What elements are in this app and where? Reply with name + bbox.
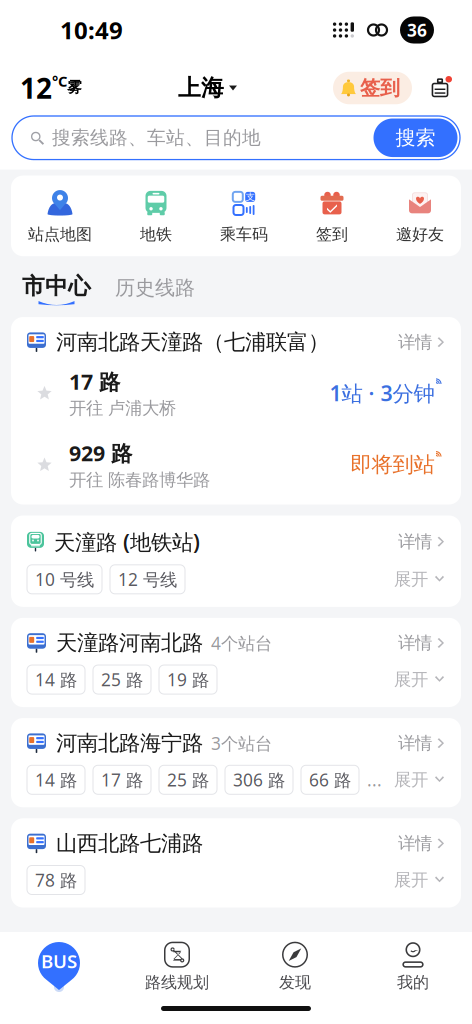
button[interactable]: 详情 xyxy=(398,732,445,754)
staticText: 10 号线 xyxy=(35,568,94,591)
button[interactable]: 展开 xyxy=(394,869,445,891)
button[interactable]: 展开 xyxy=(394,669,445,690)
staticText: 开往 陈春路博华路 xyxy=(69,469,210,490)
staticText: 开往 卢浦大桥 xyxy=(69,398,176,419)
button[interactable]: 历史线路 xyxy=(115,275,195,307)
staticText: 发现 xyxy=(279,973,311,992)
staticText: 详情 xyxy=(398,331,432,353)
button[interactable]: 详情 xyxy=(398,331,445,353)
staticText: 17 路 xyxy=(101,768,143,791)
staticText: 雾 xyxy=(67,78,82,96)
staticText: 19 路 xyxy=(167,668,209,691)
staticText: 河南北路天潼路（七浦联富） xyxy=(56,329,329,355)
button[interactable]: 详情 xyxy=(398,833,445,854)
staticText: 市中心 xyxy=(22,272,91,300)
button[interactable]: 地铁 xyxy=(140,190,172,244)
staticText: 路线规划 xyxy=(145,973,209,992)
staticText: 历史线路 xyxy=(115,275,195,300)
staticText: 25 路 xyxy=(101,668,143,691)
staticText: 站点地图 xyxy=(28,225,92,244)
staticText: 天潼路 (地铁站) xyxy=(54,527,200,556)
button[interactable]: 公交 xyxy=(0,940,118,994)
button[interactable]: 展开 xyxy=(394,569,445,590)
button[interactable]: 天潼路 (地铁站) xyxy=(11,515,461,565)
button[interactable]: 市中心 xyxy=(22,272,91,307)
button[interactable]: 卡包 xyxy=(426,75,454,101)
staticText: 展开 xyxy=(394,569,428,590)
staticText: 25 路 xyxy=(167,768,209,791)
staticText: 搜索 xyxy=(395,125,435,150)
staticText: 即将到站 xyxy=(350,452,434,478)
staticText: 306 路 xyxy=(233,768,285,791)
button[interactable]: 山西北路七浦路 xyxy=(11,818,461,865)
staticText: 河南北路海宁路 xyxy=(56,730,203,756)
staticText: 签到 xyxy=(316,225,348,244)
staticText: 17 路 xyxy=(69,367,120,396)
button[interactable]: 搜索 xyxy=(373,118,457,157)
button[interactable]: 河南北路海宁路 xyxy=(11,718,461,765)
button[interactable]: 上海 xyxy=(178,74,237,102)
staticText: 66 路 xyxy=(309,768,351,791)
staticText: 详情 xyxy=(398,833,432,854)
staticText: 3个站台 xyxy=(211,732,272,755)
staticText: BUS xyxy=(41,949,77,973)
button[interactable]: 河南北路天潼路（七浦联富） xyxy=(11,317,461,357)
staticText: 展开 xyxy=(394,769,428,790)
button[interactable]: 展开 xyxy=(394,769,445,790)
staticText: 乘车码 xyxy=(220,225,268,244)
staticText: 78 路 xyxy=(35,868,77,891)
staticText: ... xyxy=(367,768,382,791)
staticText: 详情 xyxy=(398,732,432,754)
staticText: 929 路 xyxy=(69,439,132,467)
staticText: 邀好友 xyxy=(396,225,444,244)
staticText: 14 路 xyxy=(35,668,77,691)
staticText: 我的 xyxy=(397,973,429,992)
staticText: 10:49 xyxy=(60,14,123,46)
staticText: 山西北路七浦路 xyxy=(56,830,203,856)
staticText: 搜索线路、车站、目的地 xyxy=(52,126,261,149)
button[interactable]: 929 路 xyxy=(11,429,461,500)
staticText: 14 路 xyxy=(35,768,77,791)
staticText: 天潼路河南北路 xyxy=(56,630,203,656)
staticText: 地铁 xyxy=(140,225,172,244)
staticText: 12 号线 xyxy=(118,568,177,591)
staticText: 上海 xyxy=(178,74,224,102)
button[interactable]: 天潼路河南北路 xyxy=(11,618,461,665)
button[interactable]: 发现 xyxy=(236,942,354,992)
staticText: 1站 · 3分钟 xyxy=(329,379,434,407)
staticText: 36 xyxy=(407,18,427,41)
button[interactable]: 我的 xyxy=(354,942,472,992)
staticText: °C xyxy=(52,71,67,91)
button[interactable]: 详情 xyxy=(398,531,445,552)
staticText: 展开 xyxy=(394,869,428,891)
button[interactable]: 支 xyxy=(220,190,268,244)
staticText: 详情 xyxy=(398,531,432,552)
button[interactable]: 签到 xyxy=(316,190,348,244)
button[interactable]: 17 路 xyxy=(11,357,461,429)
button[interactable]: 站点地图 xyxy=(28,190,92,244)
button[interactable]: 详情 xyxy=(398,632,445,654)
staticText: 详情 xyxy=(398,632,432,654)
staticText: 展开 xyxy=(394,669,428,690)
staticText: 签到 xyxy=(360,76,400,100)
staticText: 支 xyxy=(246,191,255,203)
staticText: 4个站台 xyxy=(211,631,272,654)
button[interactable]: 路线规划 xyxy=(118,942,236,992)
button[interactable]: 签到 xyxy=(333,72,412,104)
staticText: 12 xyxy=(20,69,52,107)
button[interactable]: 邀好友 xyxy=(396,190,444,244)
